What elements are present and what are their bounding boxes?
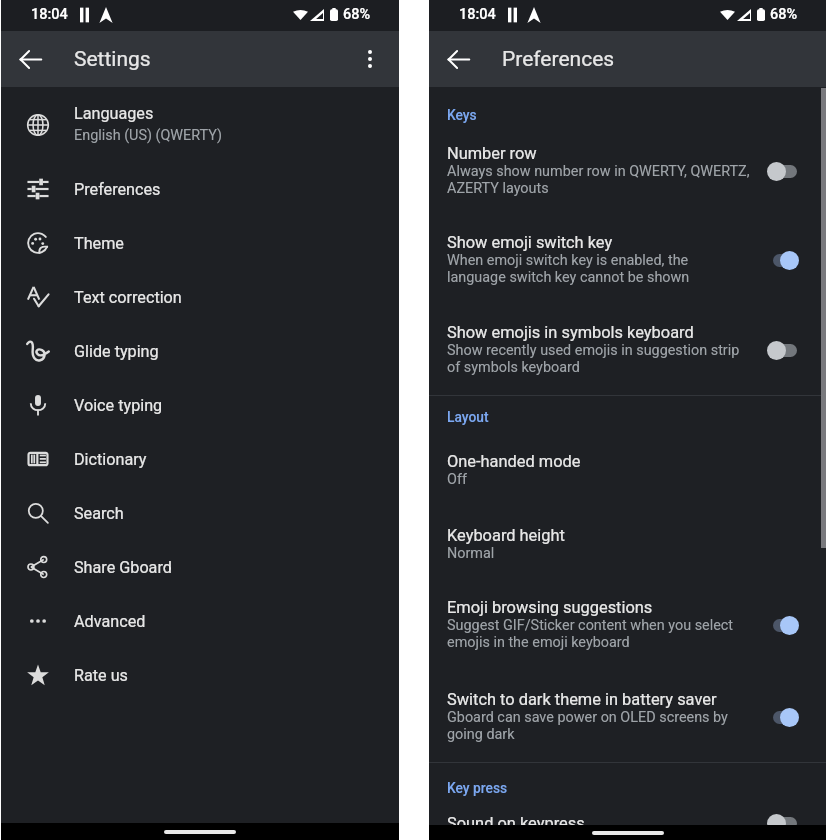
staticText: Languages bbox=[74, 104, 154, 123]
staticText: Text correction bbox=[74, 288, 182, 307]
staticText: Search bbox=[74, 504, 124, 523]
staticText: Theme bbox=[74, 234, 124, 253]
staticText: English (US) (QWERTY) bbox=[74, 127, 222, 144]
button[interactable]: Switch to dark theme in battery saver bbox=[429, 690, 826, 743]
staticText: Show recently used emojis in suggestion … bbox=[447, 342, 740, 376]
button[interactable]: Toggle on bbox=[761, 608, 805, 642]
staticText: 18:04 bbox=[31, 6, 68, 23]
button[interactable]: Dictionary bbox=[1, 432, 399, 486]
staticText: 68% bbox=[770, 6, 798, 23]
button[interactable]: Theme bbox=[1, 216, 399, 270]
button[interactable]: Share Gboard bbox=[1, 540, 399, 594]
staticText: Rate us bbox=[74, 666, 128, 685]
button[interactable]: Show emoji switch key bbox=[429, 233, 826, 286]
staticText: Always show number row in QWERTY, QWERTZ… bbox=[447, 163, 750, 197]
staticText: Preferences bbox=[502, 47, 615, 72]
button[interactable]: Toggle off bbox=[761, 333, 805, 367]
button[interactable]: Preferences bbox=[1, 162, 399, 216]
staticText: Key press bbox=[447, 780, 508, 796]
button[interactable]: Toggle on bbox=[761, 243, 805, 277]
staticText: Share Gboard bbox=[74, 558, 172, 577]
button[interactable]: Advanced bbox=[1, 594, 399, 648]
staticText: Layout bbox=[447, 409, 489, 425]
staticText: Glide typing bbox=[74, 342, 159, 361]
staticText: Advanced bbox=[74, 612, 146, 631]
button[interactable]: Glide typing bbox=[1, 324, 399, 378]
staticText: Emoji browsing suggestions bbox=[447, 598, 653, 617]
staticText: Dictionary bbox=[74, 450, 147, 469]
staticText: Switch to dark theme in battery saver bbox=[447, 690, 717, 709]
staticText: When emoji switch key is enabled, the la… bbox=[447, 252, 690, 286]
staticText: Off bbox=[447, 471, 467, 488]
staticText: Number row bbox=[447, 144, 537, 163]
button[interactable]: One-handed mode bbox=[429, 452, 826, 488]
button[interactable]: Back bbox=[10, 39, 50, 79]
button[interactable]: Rate us bbox=[1, 648, 399, 702]
staticText: 18:04 bbox=[459, 6, 496, 23]
staticText: Show emojis in symbols keyboard bbox=[447, 323, 694, 342]
button[interactable]: Toggle off bbox=[761, 807, 805, 840]
button[interactable]: Search bbox=[1, 486, 399, 540]
staticText: Settings bbox=[74, 47, 151, 72]
button[interactable]: Toggle off bbox=[761, 154, 805, 188]
staticText: 68% bbox=[343, 6, 371, 23]
staticText: Gboard can save power on OLED screens by… bbox=[447, 709, 728, 743]
button[interactable]: Back bbox=[438, 39, 478, 79]
staticText: Suggest GIF/Sticker content when you sel… bbox=[447, 617, 734, 651]
staticText: Show emoji switch key bbox=[447, 233, 613, 252]
button[interactable]: Languages bbox=[1, 87, 399, 162]
button[interactable]: Show emojis in symbols keyboard bbox=[429, 323, 826, 376]
button[interactable]: Voice typing bbox=[1, 378, 399, 432]
button[interactable]: Keyboard height bbox=[429, 526, 826, 562]
staticText: Normal bbox=[447, 545, 495, 562]
button[interactable]: Number row bbox=[429, 144, 826, 197]
staticText: Keys bbox=[447, 107, 477, 123]
button[interactable]: Text correction bbox=[1, 270, 399, 324]
button[interactable]: Toggle on bbox=[761, 700, 805, 734]
staticText: Keyboard height bbox=[447, 526, 565, 545]
button[interactable]: Sound on keypress bbox=[429, 807, 826, 840]
staticText: One-handed mode bbox=[447, 452, 581, 471]
button[interactable]: More options bbox=[350, 39, 390, 79]
staticText: Voice typing bbox=[74, 396, 163, 415]
button[interactable]: Emoji browsing suggestions bbox=[429, 598, 826, 651]
staticText: Preferences bbox=[74, 180, 161, 199]
staticText: Sound on keypress bbox=[447, 814, 585, 833]
